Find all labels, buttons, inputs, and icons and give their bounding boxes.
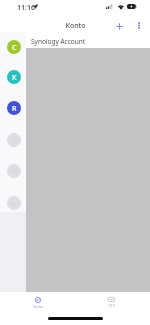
staticText: 11:16 bbox=[17, 3, 35, 13]
button[interactable]: K bbox=[0, 155, 26, 186]
staticText: OTP bbox=[108, 303, 115, 308]
staticText: Konto bbox=[33, 304, 43, 309]
staticText: L bbox=[12, 198, 16, 208]
staticText: K bbox=[12, 72, 17, 82]
button[interactable]: R bbox=[0, 92, 26, 123]
staticText: Synology Account bbox=[31, 37, 86, 46]
button[interactable]: K bbox=[0, 61, 26, 92]
staticText: C bbox=[12, 135, 17, 145]
button[interactable]: C bbox=[0, 31, 26, 62]
staticText: K bbox=[12, 166, 17, 176]
button[interactable]: More options bbox=[132, 18, 146, 32]
staticText: C bbox=[12, 42, 17, 52]
button[interactable]: OTP bbox=[95, 292, 127, 312]
button[interactable]: Konto bbox=[22, 292, 54, 312]
button[interactable]: L bbox=[0, 187, 26, 218]
staticText: Konto bbox=[65, 21, 86, 31]
staticText: R bbox=[12, 103, 17, 113]
button[interactable]: C bbox=[0, 124, 26, 155]
button[interactable]: Add account bbox=[112, 19, 126, 33]
